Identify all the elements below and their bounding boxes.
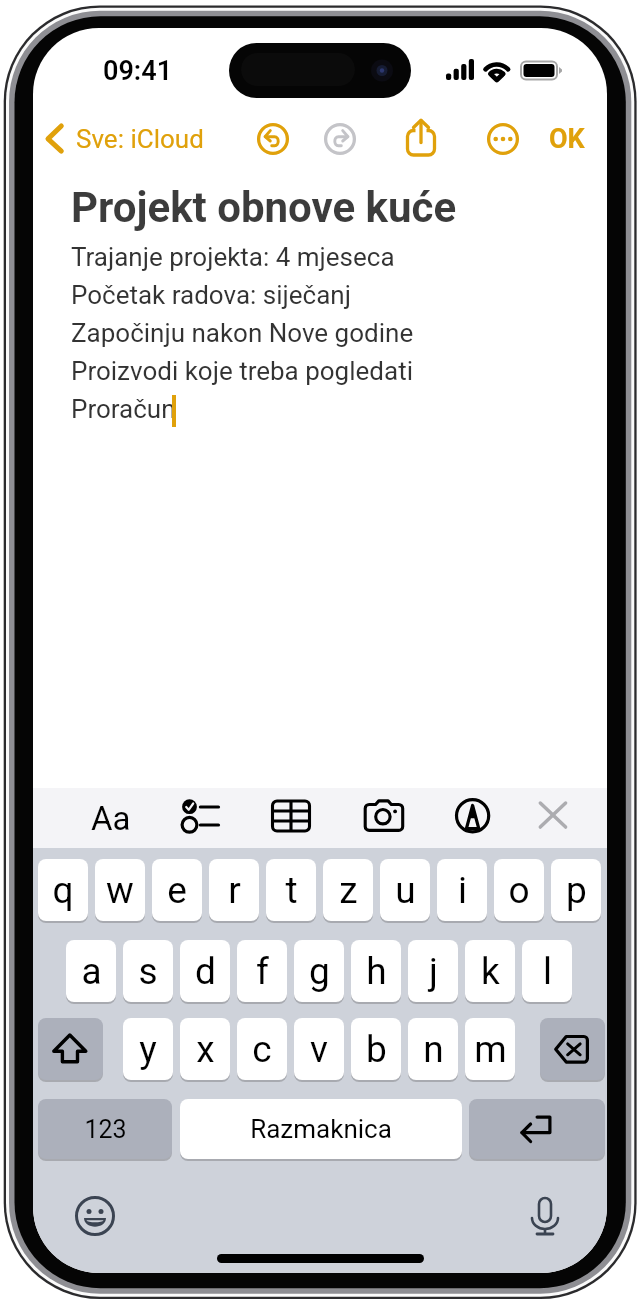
staticText: Projekt obnove kuće (71, 183, 457, 232)
staticText: 123 (84, 1115, 127, 1144)
button[interactable]: More (485, 121, 521, 157)
button[interactable]: Markup (449, 793, 495, 839)
button[interactable]: r (209, 859, 259, 921)
button[interactable]: d (180, 940, 230, 1002)
button[interactable]: b (351, 1018, 401, 1080)
staticText: Započinju nakon Nove godine (71, 318, 414, 348)
staticText: o (508, 869, 530, 912)
staticText: y (139, 1028, 157, 1071)
button[interactable]: Table (268, 793, 314, 839)
button[interactable]: 123 (38, 1099, 172, 1159)
staticText: e (167, 869, 187, 912)
button[interactable]: w (95, 859, 145, 921)
staticText: g (309, 950, 330, 993)
staticText: Sve: iCloud (76, 124, 204, 154)
staticText: OK (549, 123, 585, 155)
button[interactable]: Close (530, 793, 576, 839)
button[interactable]: Razmaknica (180, 1099, 462, 1159)
button[interactable]: j (408, 940, 458, 1002)
button[interactable]: k (465, 940, 515, 1002)
staticText: x (196, 1028, 215, 1071)
staticText: z (339, 869, 358, 912)
button[interactable]: m (465, 1018, 515, 1080)
button[interactable]: a (66, 940, 116, 1002)
staticText: d (195, 950, 216, 993)
button[interactable]: f (237, 940, 287, 1002)
staticText: Proizvodi koje treba pogledati (71, 356, 413, 386)
staticText: h (366, 950, 387, 993)
button[interactable]: l (522, 940, 572, 1002)
button[interactable]: u (380, 859, 430, 921)
button[interactable]: Camera (361, 793, 407, 839)
staticText: w (106, 869, 134, 912)
staticText: q (52, 869, 74, 912)
staticText: k (481, 950, 500, 993)
staticText: a (81, 950, 102, 993)
button[interactable]: Undo (255, 121, 291, 157)
staticText: m (474, 1028, 507, 1071)
staticText: v (310, 1028, 328, 1071)
button[interactable]: z (323, 859, 373, 921)
staticText: Razmaknica (250, 1114, 392, 1144)
button[interactable]: Backspace (540, 1018, 605, 1080)
staticText: Aa (91, 799, 131, 838)
button[interactable]: Checklist (176, 793, 222, 839)
button[interactable]: v (294, 1018, 344, 1080)
staticText: l (543, 950, 552, 993)
button[interactable]: Shift (38, 1018, 103, 1080)
staticText: n (423, 1028, 444, 1071)
staticText: b (366, 1028, 387, 1071)
button[interactable]: OK (549, 116, 585, 162)
button[interactable]: c (237, 1018, 287, 1080)
button[interactable]: Share (402, 116, 440, 162)
button[interactable]: s (123, 940, 173, 1002)
staticText: p (566, 869, 587, 912)
button[interactable]: h (351, 940, 401, 1002)
button[interactable]: Redo (322, 121, 358, 157)
button[interactable]: t (266, 859, 316, 921)
staticText: t (285, 869, 298, 912)
staticText: 09:41 (103, 55, 173, 87)
button[interactable]: Sve: iCloud (45, 116, 204, 162)
staticText: Proračun (71, 394, 176, 424)
button[interactable]: q (38, 859, 88, 921)
staticText: c (252, 1028, 272, 1071)
staticText: i (458, 869, 467, 912)
button[interactable]: n (408, 1018, 458, 1080)
button[interactable]: p (551, 859, 601, 921)
staticText: r (228, 869, 241, 912)
button[interactable]: Return (469, 1099, 605, 1159)
button[interactable]: o (494, 859, 544, 921)
button[interactable]: Emoji (75, 1196, 115, 1236)
button[interactable]: Text format (88, 795, 134, 841)
staticText: f (256, 950, 269, 993)
button[interactable]: x (180, 1018, 230, 1080)
staticText: s (138, 950, 158, 993)
button[interactable]: g (294, 940, 344, 1002)
staticText: Trajanje projekta: 4 mjeseca (71, 242, 395, 272)
button[interactable]: i (437, 859, 487, 921)
button[interactable]: y (123, 1018, 173, 1080)
staticText: j (429, 950, 438, 993)
button[interactable]: e (152, 859, 202, 921)
staticText: Početak radova: siječanj (71, 280, 351, 310)
button[interactable]: Dictation (525, 1196, 565, 1236)
staticText: u (395, 869, 416, 912)
